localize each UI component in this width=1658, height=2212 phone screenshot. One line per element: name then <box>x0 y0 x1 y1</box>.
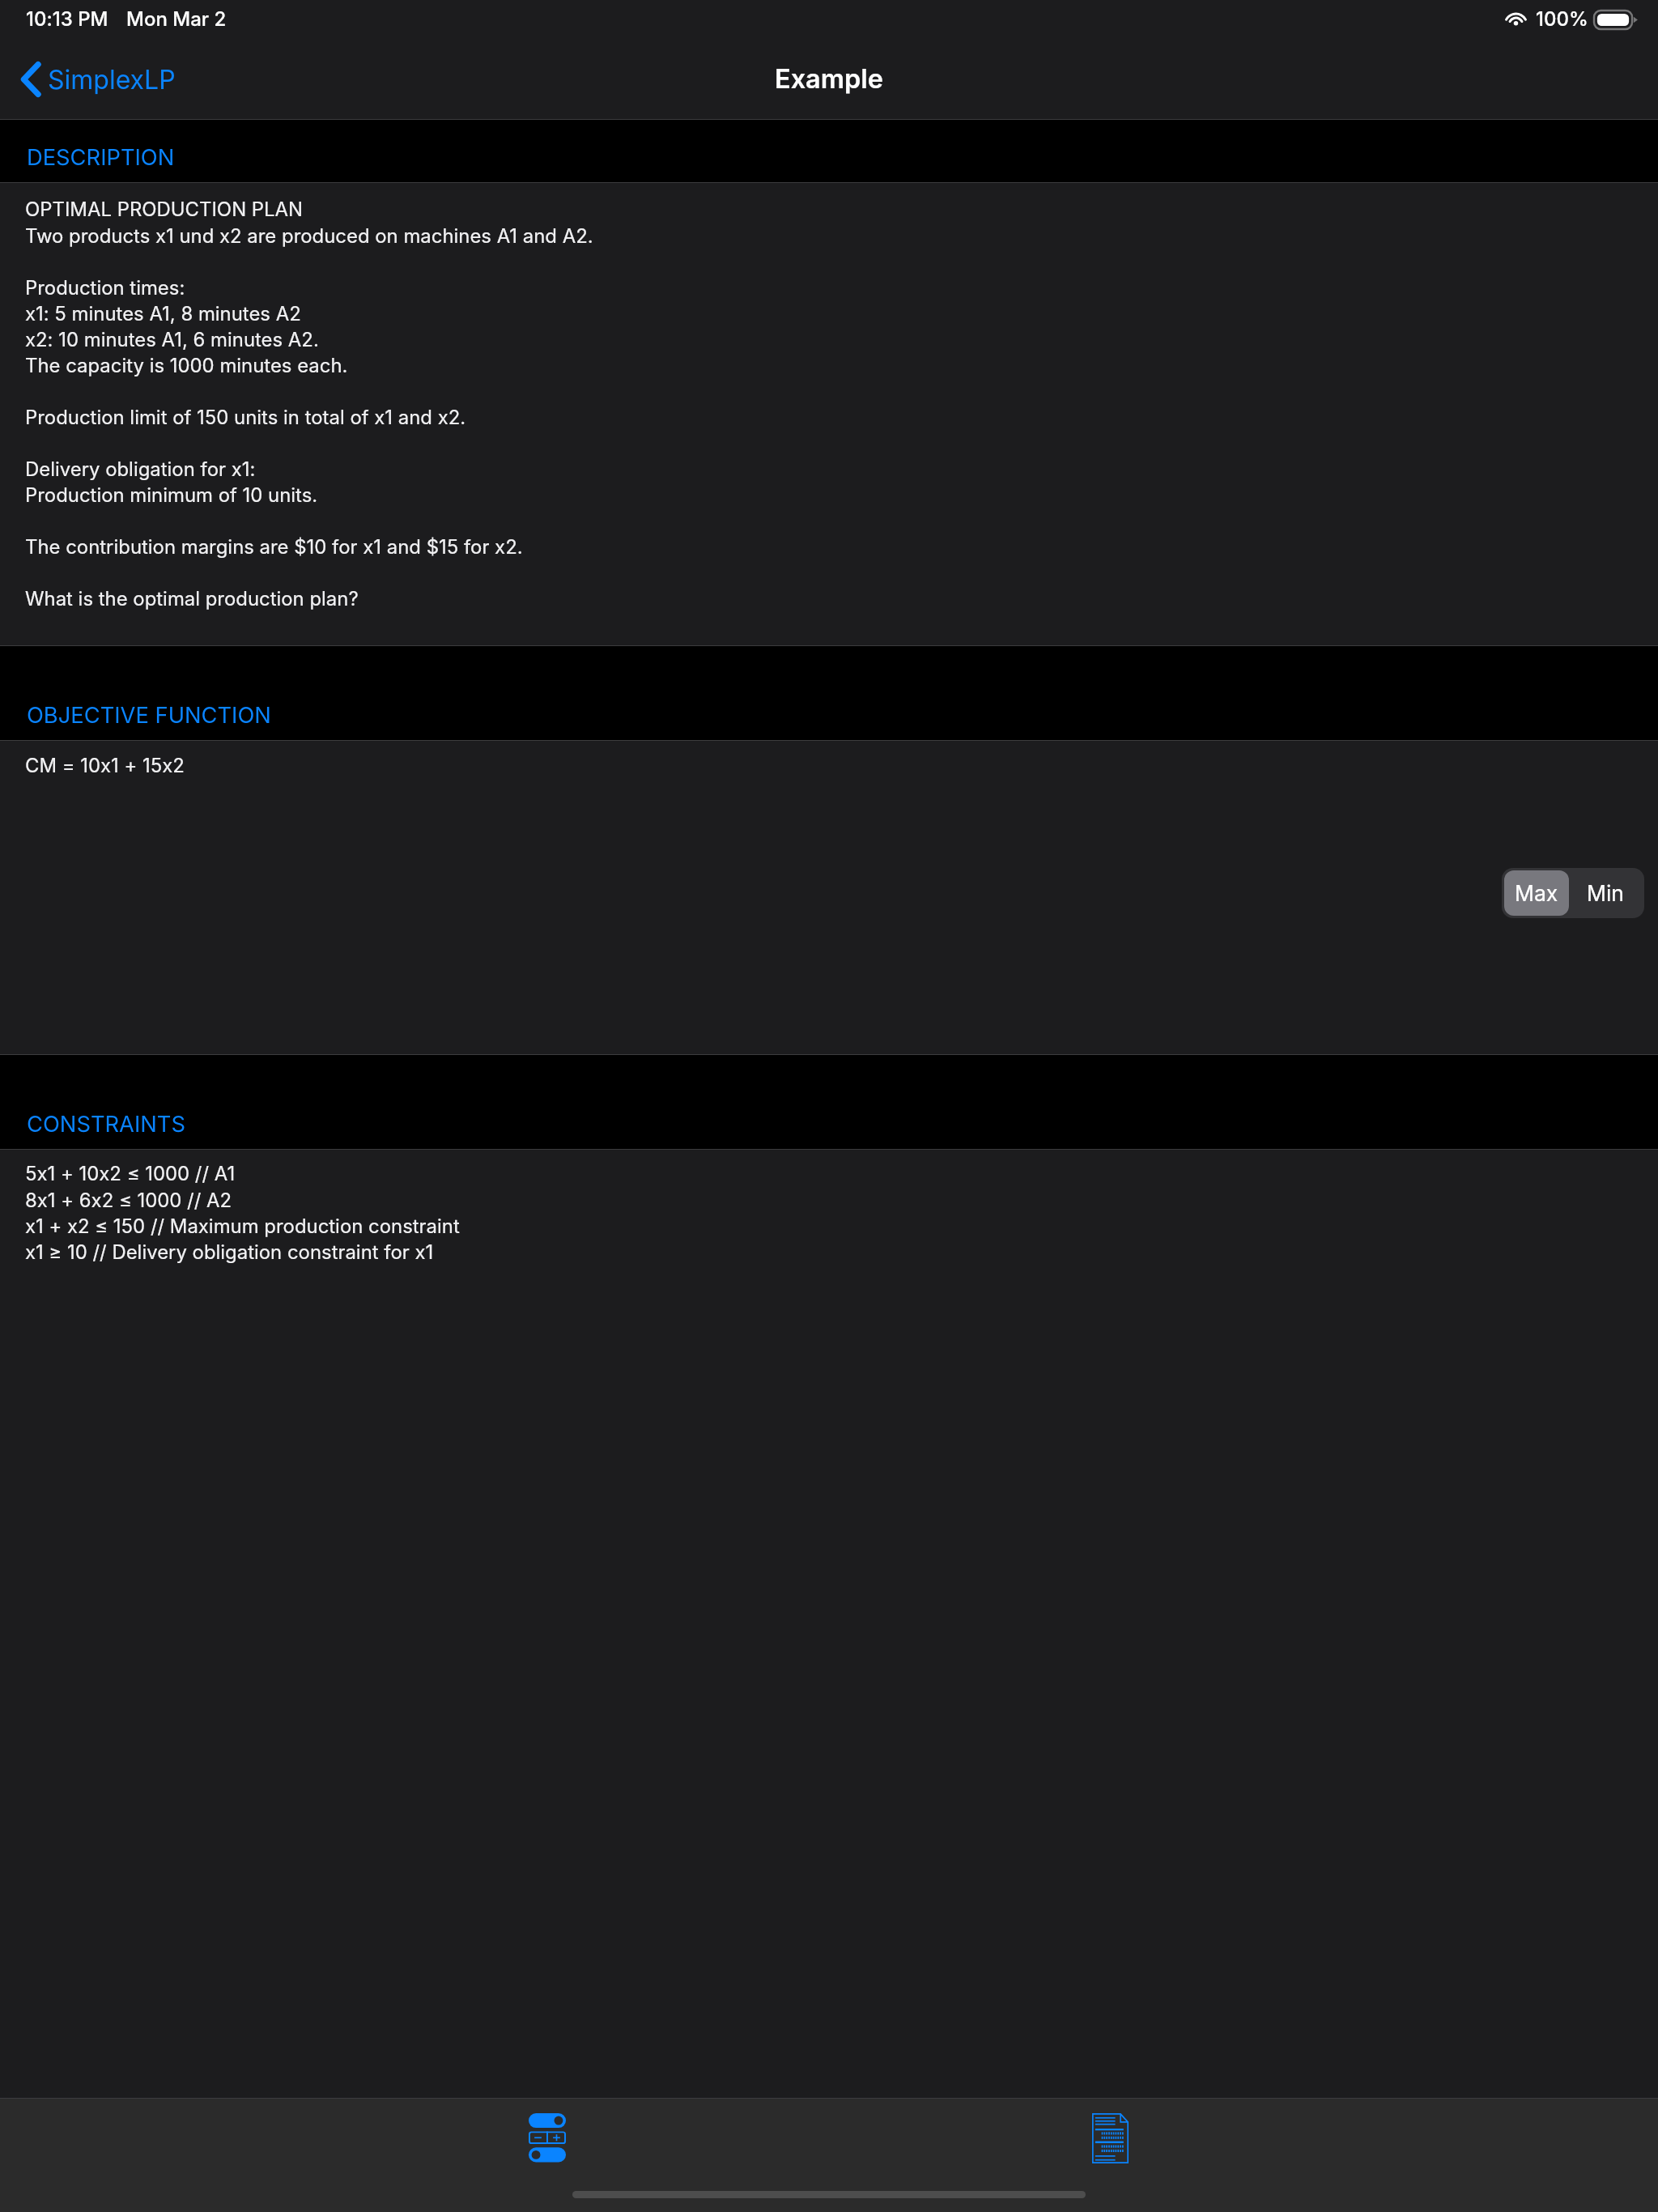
staticText: OBJECTIVE FUNCTION <box>27 702 271 729</box>
staticText: 5x1 + 10x2 ≤ 1000 // A1 8x1 + 6x2 ≤ 1000… <box>25 1162 460 1263</box>
staticText: Mon Mar 2 <box>126 7 227 31</box>
staticText: 10:13 PM <box>26 7 108 31</box>
staticText: CONSTRAINTS <box>27 1111 185 1138</box>
button[interactable]: SimplexLP <box>0 49 195 104</box>
staticText: 100% <box>1536 7 1588 31</box>
staticText: Example <box>775 63 884 95</box>
staticText: OPTIMAL PRODUCTION PLAN Two products x1 … <box>25 198 593 610</box>
staticText: Max <box>1515 880 1558 906</box>
button[interactable]: Model settings <box>508 2093 586 2184</box>
button[interactable]: Max <box>1504 870 1569 916</box>
button[interactable]: Min <box>1569 870 1642 916</box>
staticText: CM = 10x1 + 15x2 <box>25 754 185 777</box>
staticText: Min <box>1587 880 1625 906</box>
staticText: DESCRIPTION <box>27 144 175 171</box>
staticText: SimplexLP <box>48 64 176 96</box>
button[interactable]: Report <box>1072 2093 1149 2184</box>
